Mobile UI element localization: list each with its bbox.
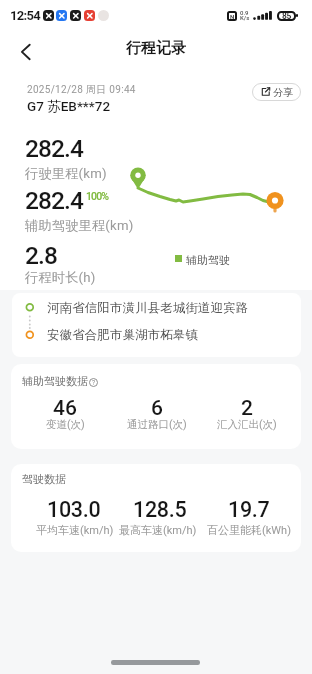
staticText: K/s bbox=[240, 14, 250, 21]
staticText: 0.9 bbox=[240, 9, 249, 16]
button[interactable]: 安徽省合肥市巢湖市柘皋镇 bbox=[47, 327, 199, 343]
staticText: 行程时长(h) bbox=[25, 269, 96, 286]
staticText: N bbox=[230, 13, 235, 20]
staticText: 百公里能耗(kWh) bbox=[207, 523, 291, 537]
staticText: ? bbox=[92, 379, 96, 387]
button[interactable]: 分享 bbox=[252, 83, 301, 101]
staticText: 6 bbox=[151, 396, 163, 421]
staticText: 2025/12/28 周日 09:44 bbox=[27, 83, 136, 96]
staticText: G7 苏EB***72 bbox=[27, 98, 111, 115]
staticText: 分享 bbox=[273, 86, 293, 99]
staticText: 行驶里程(km) bbox=[25, 165, 107, 182]
staticText: 行程记录 bbox=[126, 39, 186, 58]
staticText: 河南省信阳市潢川县老城街道迎宾路 bbox=[47, 300, 249, 316]
staticText: 最高车速(km/h) bbox=[119, 523, 197, 537]
staticText: 85 bbox=[282, 11, 292, 21]
button[interactable]: 河南省信阳市潢川县老城街道迎宾路 bbox=[47, 300, 249, 316]
staticText: 2 bbox=[241, 396, 253, 421]
staticText: 100% bbox=[86, 190, 109, 202]
staticText: 2.8 bbox=[25, 241, 57, 270]
staticText: 128.5 bbox=[133, 497, 187, 522]
staticText: 282.4 bbox=[25, 134, 84, 163]
staticText: 通过路口(次) bbox=[127, 418, 187, 431]
staticText: 12:54 bbox=[10, 8, 41, 23]
staticText: 19.7 bbox=[228, 497, 270, 522]
staticText: 103.0 bbox=[47, 497, 101, 522]
staticText: 辅助驾驶 bbox=[186, 253, 230, 267]
staticText: 辅助驾驶里程(km) bbox=[25, 217, 134, 234]
staticText: 驾驶数据 bbox=[22, 472, 66, 486]
staticText: 46 bbox=[53, 396, 77, 421]
staticText: 变道(次) bbox=[46, 418, 85, 431]
staticText: 汇入汇出(次) bbox=[217, 418, 277, 431]
staticText: 282.4 bbox=[25, 186, 84, 215]
staticText: 平均车速(km/h) bbox=[36, 523, 114, 537]
button[interactable] bbox=[12, 38, 40, 66]
staticText: 辅助驾驶数据 bbox=[22, 374, 88, 388]
staticText: 安徽省合肥市巢湖市柘皋镇 bbox=[47, 327, 199, 343]
